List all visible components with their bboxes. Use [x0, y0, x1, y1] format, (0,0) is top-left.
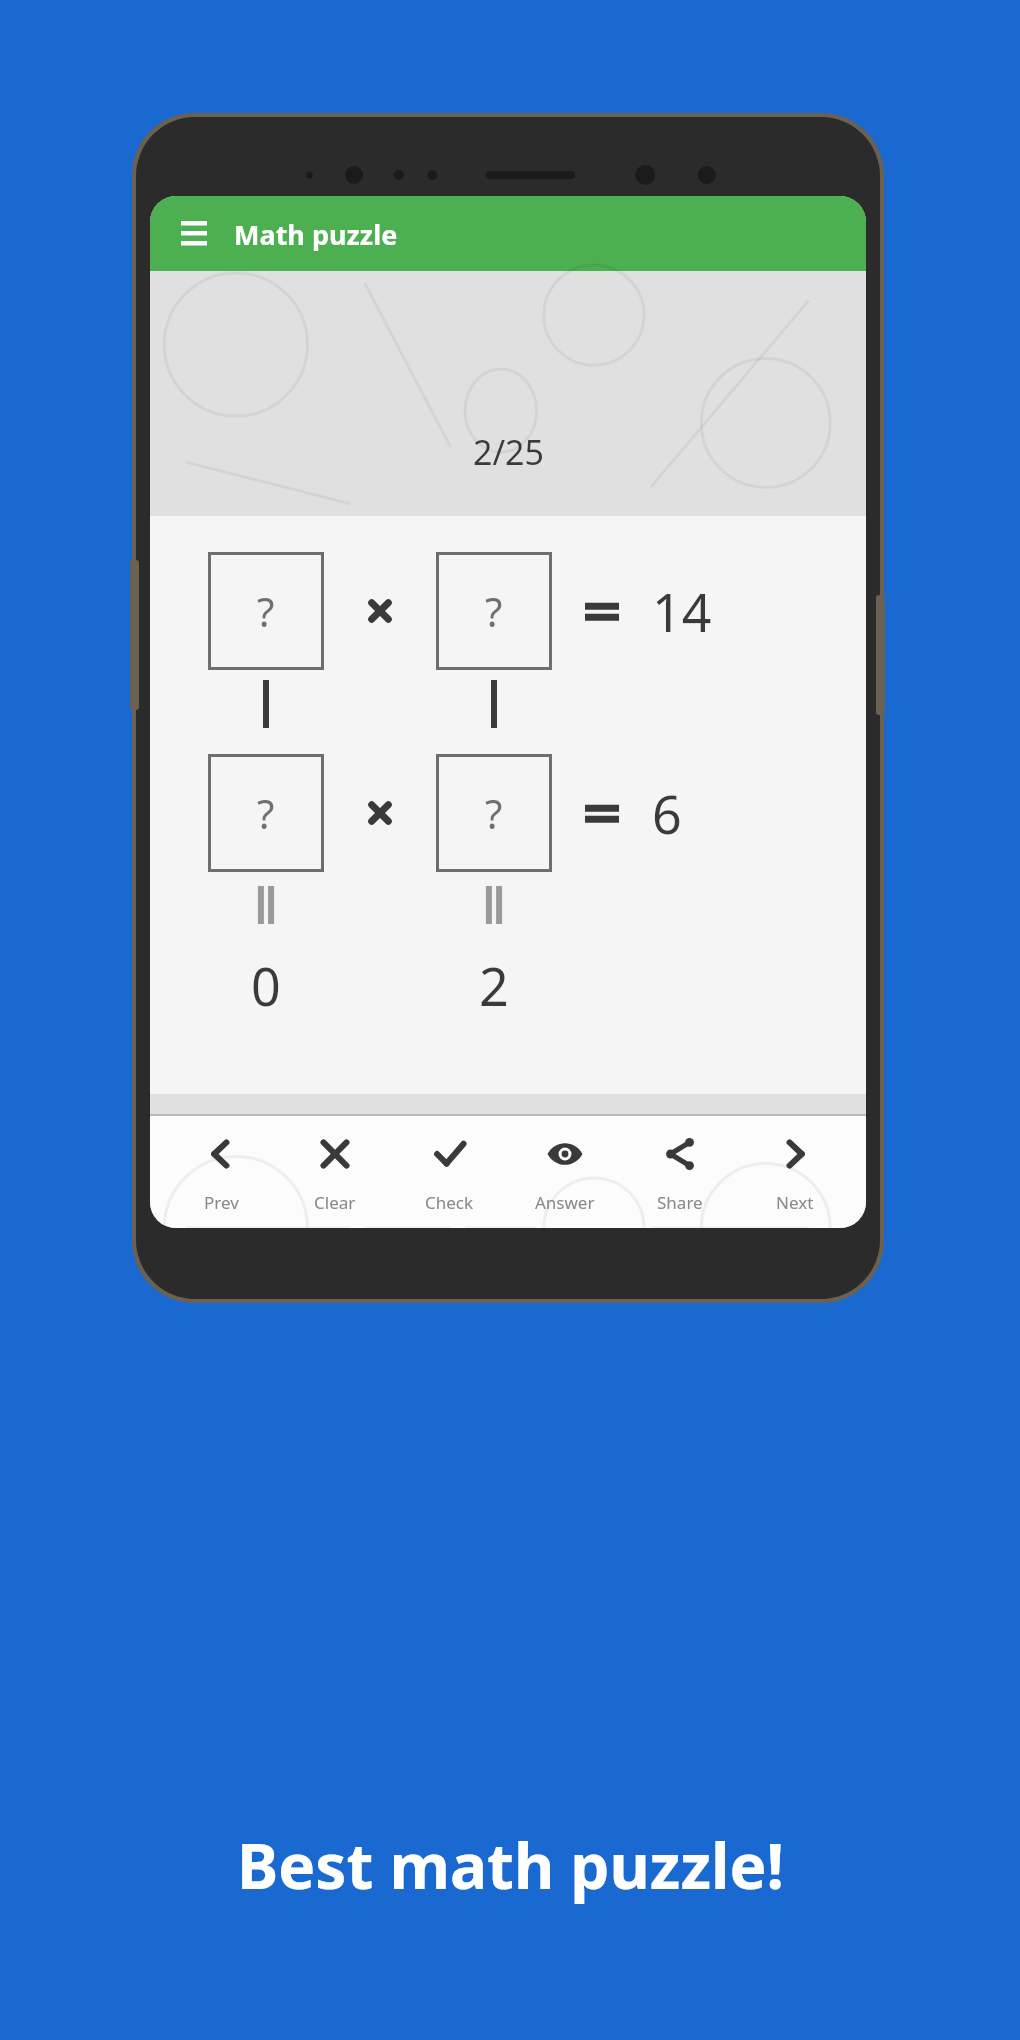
staticText: Best math puzzle! — [237, 1823, 784, 1907]
staticText: 14 — [652, 576, 712, 647]
staticText: 2/25 — [473, 429, 544, 475]
button[interactable]: Check — [392, 1116, 507, 1228]
staticText: Answer — [535, 1191, 595, 1214]
button[interactable]: Share — [622, 1116, 737, 1228]
staticText: ? — [257, 584, 275, 638]
staticText: Prev — [204, 1191, 239, 1214]
button[interactable]: Next — [737, 1116, 852, 1228]
button[interactable]: Prev — [164, 1116, 278, 1228]
staticText: 0 — [251, 950, 281, 1021]
button[interactable]: ? — [208, 552, 324, 670]
staticText: Share — [657, 1191, 703, 1214]
staticText: Check — [425, 1191, 474, 1214]
staticText: ? — [485, 786, 503, 840]
staticText: Math puzzle — [234, 216, 398, 253]
staticText: ? — [485, 584, 503, 638]
staticText: 6 — [652, 778, 682, 849]
staticText: ? — [257, 786, 275, 840]
button[interactable]: ? — [208, 754, 324, 872]
staticText: Clear — [314, 1191, 356, 1214]
button[interactable]: Clear — [278, 1116, 392, 1228]
button[interactable]: ? — [436, 552, 552, 670]
button[interactable]: Open navigation menu — [150, 196, 866, 271]
staticText: Next — [776, 1191, 814, 1214]
staticText: 2 — [479, 950, 509, 1021]
button[interactable]: Open navigation menu — [172, 212, 216, 256]
button[interactable]: Answer — [507, 1116, 622, 1228]
button[interactable]: ? — [436, 754, 552, 872]
